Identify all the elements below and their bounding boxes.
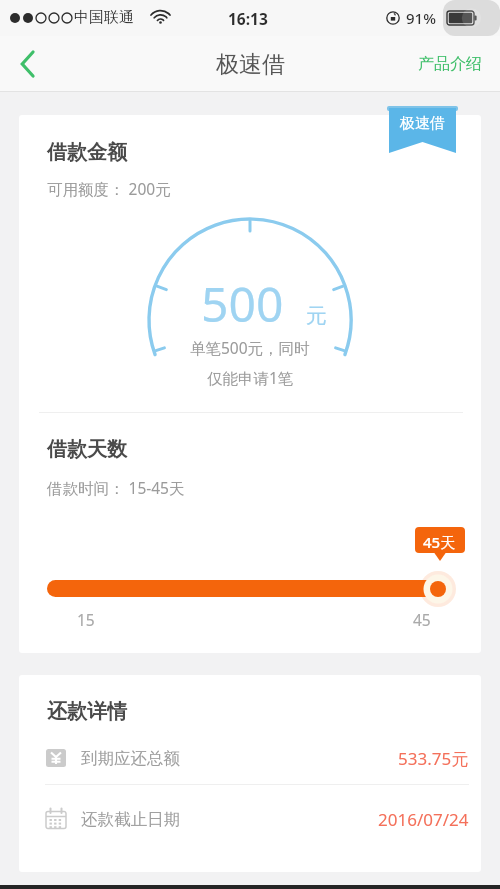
- staticText: 到期应还总额: [81, 748, 180, 769]
- staticText: 借款金额: [47, 140, 127, 165]
- staticText: 借款天数: [47, 437, 127, 462]
- button[interactable]: Back: [0, 36, 56, 92]
- staticText: 可用额度： 200元: [47, 178, 171, 199]
- button[interactable]: 45天: [47, 515, 452, 625]
- staticText: 15: [77, 609, 95, 630]
- button[interactable]: 到期应还总额: [45, 737, 469, 779]
- staticText: 16:13: [228, 8, 268, 29]
- button[interactable]: 还款截止日期: [45, 798, 469, 840]
- staticText: 仅能申请1笔: [207, 367, 294, 388]
- staticText: 45: [413, 609, 431, 630]
- staticText: 500: [201, 271, 284, 336]
- staticText: 91%: [406, 8, 436, 28]
- staticText: 还款截止日期: [81, 809, 180, 830]
- staticText: 极速借: [400, 114, 445, 133]
- staticText: 借款时间： 15-45天: [47, 477, 185, 498]
- staticText: 533.75元: [398, 747, 469, 770]
- staticText: 产品介绍: [418, 54, 482, 74]
- staticText: 极速借: [216, 50, 285, 79]
- staticText: 2016/07/24: [378, 808, 469, 831]
- staticText: 45天: [423, 532, 456, 552]
- staticText: 还款详情: [47, 699, 127, 724]
- staticText: 中国联通: [74, 8, 134, 27]
- staticText: 单笔500元，同时: [190, 337, 310, 358]
- button[interactable]: 产品介绍: [414, 46, 486, 82]
- staticText: 元: [306, 303, 327, 329]
